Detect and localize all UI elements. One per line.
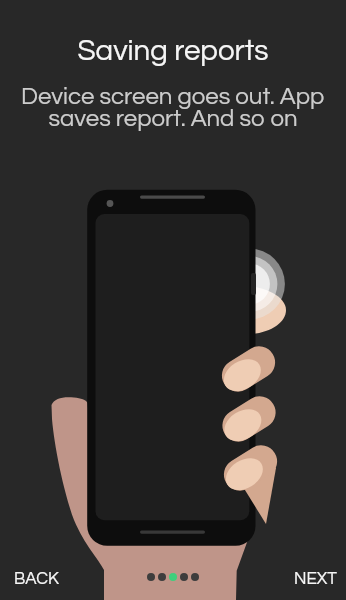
button[interactable]: BACK [0,556,81,600]
staticText: Device screen goes out. App saves report… [20,84,326,131]
staticText: Saving reports [77,36,269,66]
staticText: NEXT [294,570,337,588]
staticText: BACK [14,570,59,588]
button[interactable]: NEXT [272,556,346,600]
